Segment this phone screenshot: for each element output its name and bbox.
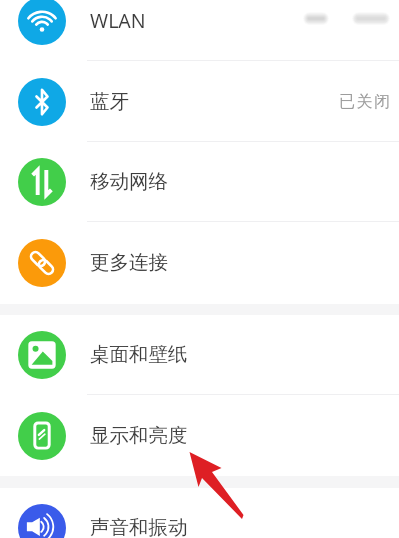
button[interactable]: WLAN (0, 0, 399, 61)
staticText: 已关闭 (339, 92, 392, 112)
staticText: 桌面和壁纸 (90, 342, 188, 367)
button[interactable]: 显示和亮度 (0, 395, 399, 476)
button[interactable]: 桌面和壁纸 (0, 314, 399, 395)
button[interactable]: 蓝牙 (0, 61, 399, 142)
staticText: 移动网络 (90, 169, 168, 194)
staticText: 更多连接 (90, 250, 168, 275)
staticText: 声音和振动 (90, 515, 188, 538)
staticText: 蓝牙 (90, 89, 129, 114)
staticText: 显示和亮度 (90, 423, 188, 448)
staticText: WLAN (90, 7, 146, 34)
button[interactable]: 移动网络 (0, 141, 399, 222)
button[interactable]: 更多连接 (0, 222, 399, 303)
button[interactable]: 声音和振动 (0, 487, 399, 538)
